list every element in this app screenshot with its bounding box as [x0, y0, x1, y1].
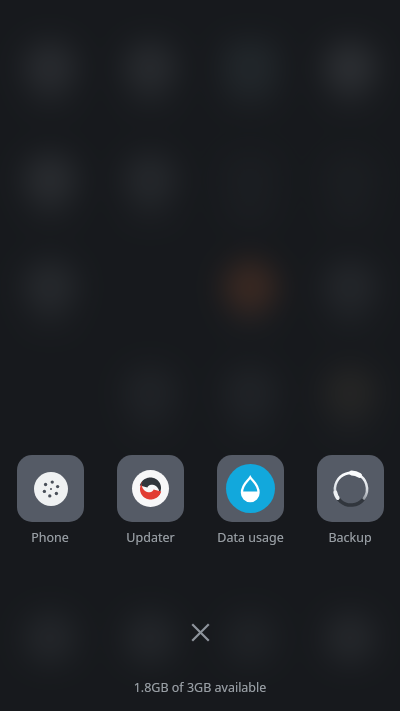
- button[interactable]: Updater: [100, 455, 200, 546]
- staticText: 1.8GB of 3GB available: [0, 679, 400, 696]
- staticText: Updater: [126, 529, 175, 546]
- staticText: Backup: [328, 529, 372, 546]
- staticText: Phone: [31, 529, 69, 546]
- button[interactable]: Backup: [300, 455, 400, 546]
- button[interactable]: Close: [176, 608, 224, 656]
- button[interactable]: Phone: [0, 455, 100, 546]
- button[interactable]: Data usage: [200, 455, 300, 546]
- staticText: Data usage: [217, 529, 284, 546]
